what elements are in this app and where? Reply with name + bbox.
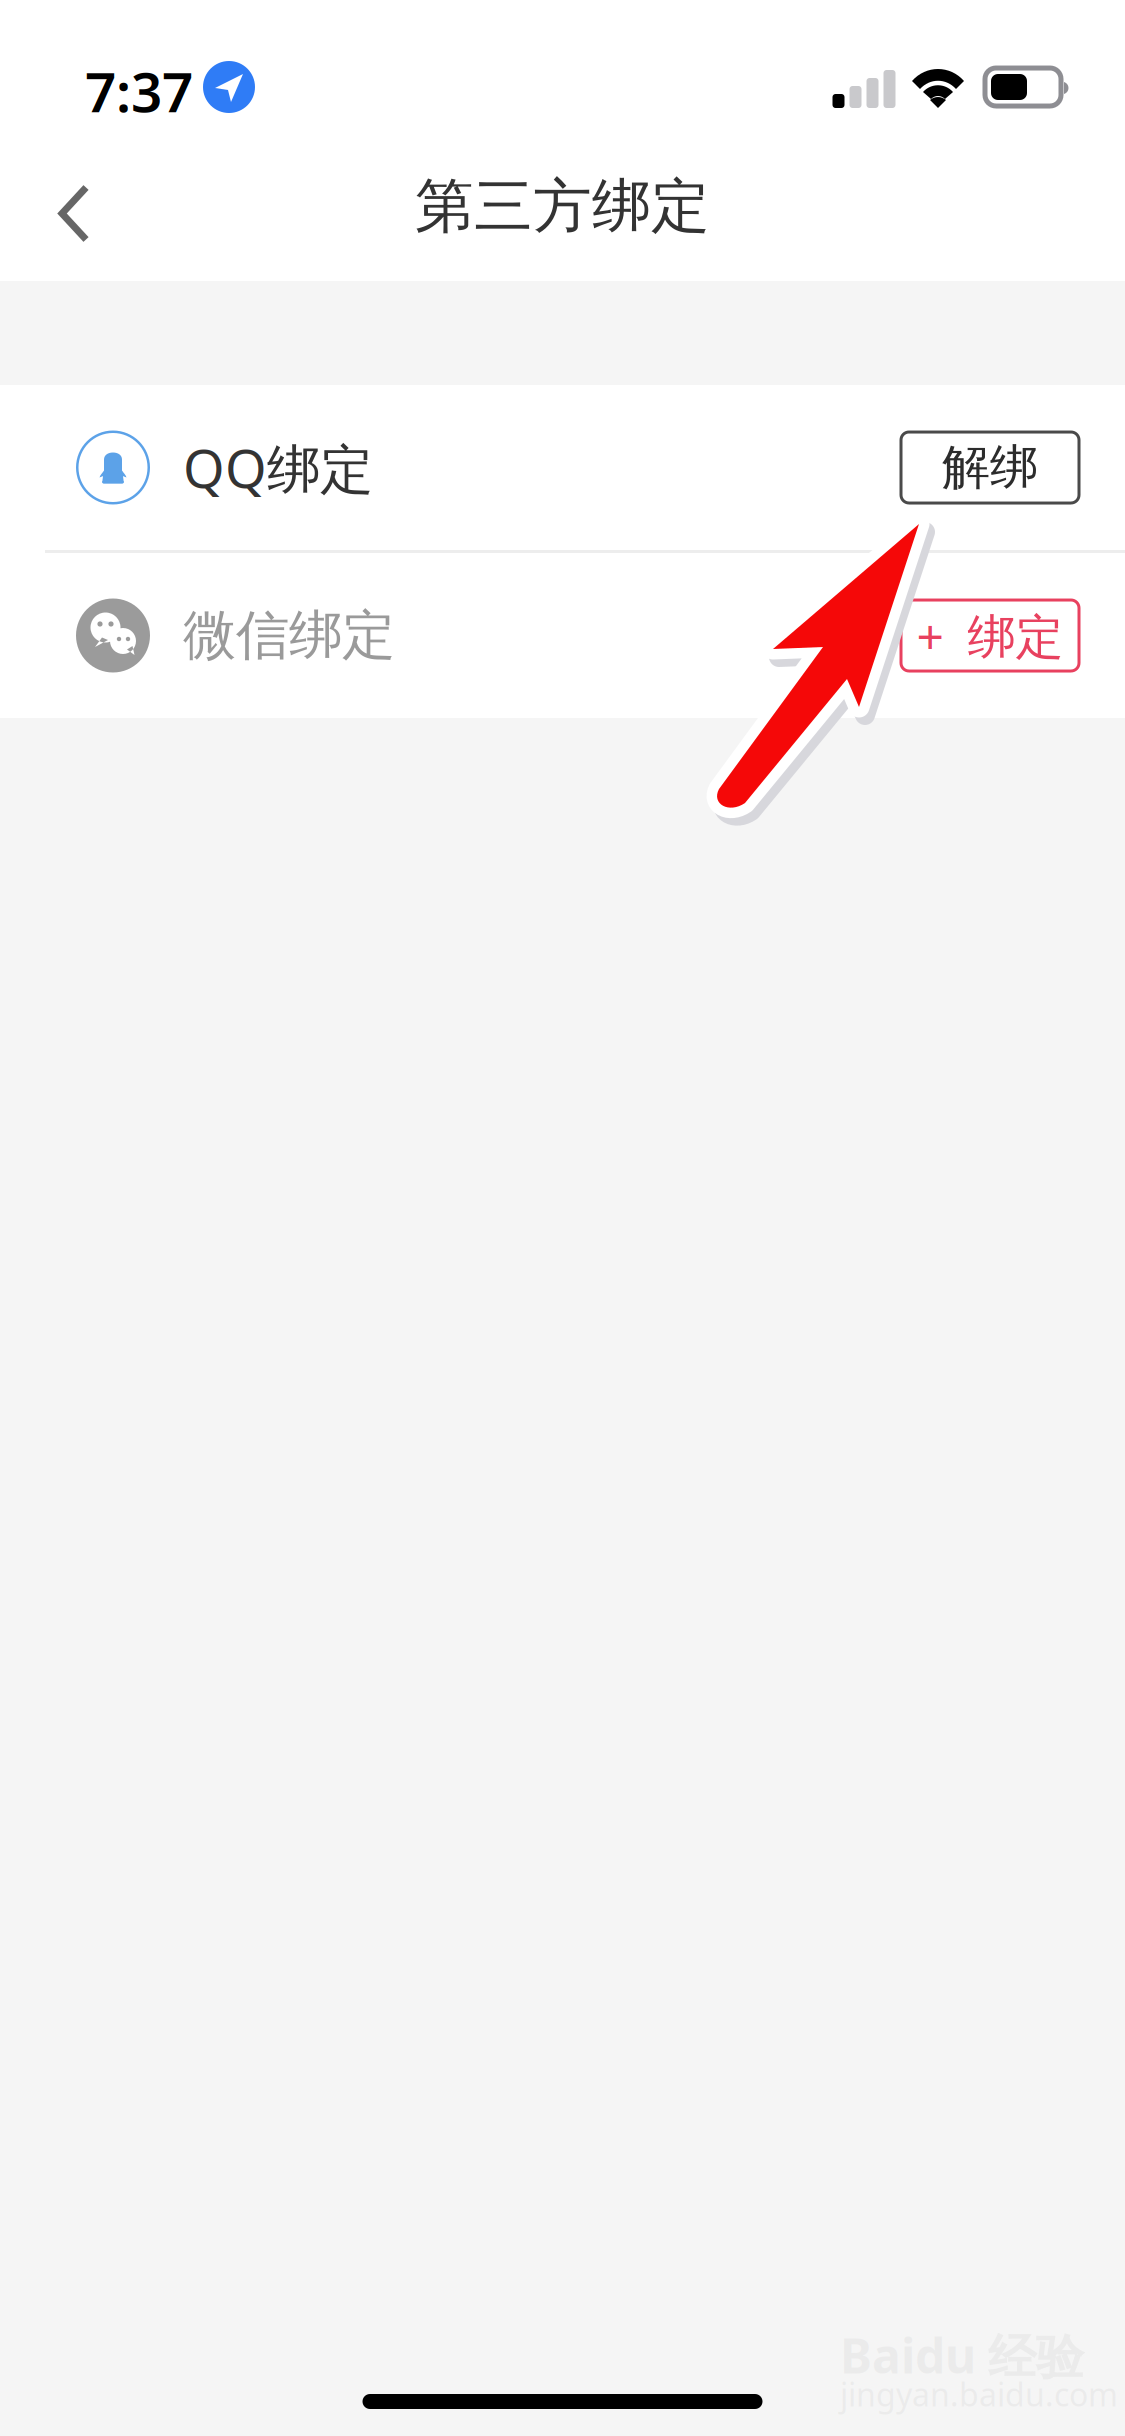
button[interactable]: + 绑定 (901, 600, 1079, 671)
staticText: QQ绑定 (183, 432, 373, 503)
button[interactable]: Back (0, 151, 130, 261)
staticText: 微信绑定 (183, 603, 395, 668)
staticText: jingyan.baidu.com (840, 2373, 1118, 2415)
staticText: 第三方绑定 (415, 170, 710, 243)
staticText: 7:37 (85, 55, 193, 127)
staticText: Baidu 经验 (840, 2323, 1084, 2387)
button[interactable]: 解绑 (901, 432, 1079, 503)
staticText: + 绑定 (916, 604, 1063, 667)
staticText: 解绑 (942, 438, 1038, 497)
